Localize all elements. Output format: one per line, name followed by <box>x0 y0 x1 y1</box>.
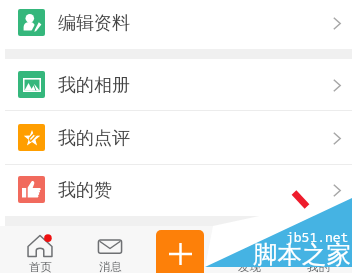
staticText: 首页 <box>29 260 52 273</box>
staticText: 我的赞 <box>58 179 112 202</box>
staticText: 发现 <box>238 260 261 273</box>
staticText: jb51.net <box>286 228 349 246</box>
staticText: 消息 <box>99 260 122 273</box>
staticText: 我的相册 <box>58 74 130 97</box>
button[interactable]: 消息 <box>75 226 145 273</box>
button[interactable]: 我的 <box>283 226 352 273</box>
staticText: 我的 <box>307 260 330 273</box>
button[interactable]: 首页 <box>5 226 75 273</box>
button[interactable]: 我的赞 <box>0 165 352 216</box>
button[interactable]: Add <box>156 230 204 273</box>
staticText: 编辑资料 <box>58 12 130 35</box>
button[interactable]: 我的相册 <box>0 59 352 110</box>
staticText: 脚本之家 <box>253 239 351 270</box>
staticText: 我的点评 <box>58 127 130 150</box>
button[interactable]: 编辑资料 <box>0 0 352 49</box>
button[interactable]: 我的点评 <box>0 111 352 164</box>
button[interactable]: 发现 <box>214 226 283 273</box>
